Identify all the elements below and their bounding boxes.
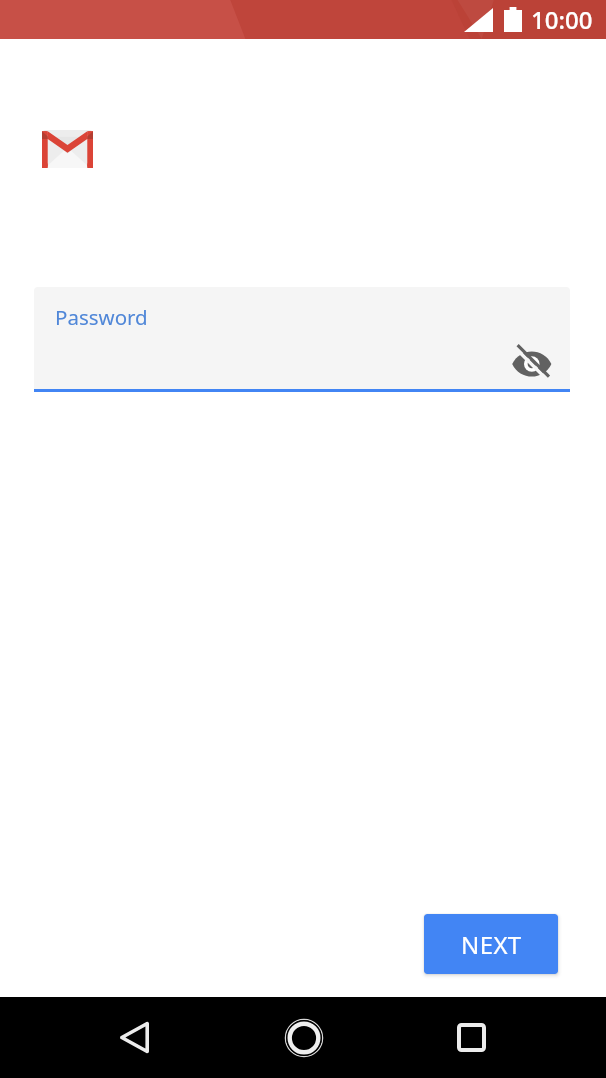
other: Gmail (42, 130, 93, 168)
button[interactable]: NEXT (424, 914, 558, 974)
staticText: 10:00 (531, 3, 593, 36)
button[interactable]: Recent apps (441, 1007, 502, 1068)
other: Battery full (504, 7, 522, 32)
button[interactable]: Password (34, 287, 570, 389)
staticText: NEXT (461, 928, 522, 961)
button[interactable]: Home (273, 1007, 334, 1068)
button[interactable]: Show password (508, 337, 556, 385)
staticText: Password (55, 303, 148, 331)
other: Mobile signal (464, 8, 493, 32)
button[interactable]: Back (104, 1007, 165, 1068)
